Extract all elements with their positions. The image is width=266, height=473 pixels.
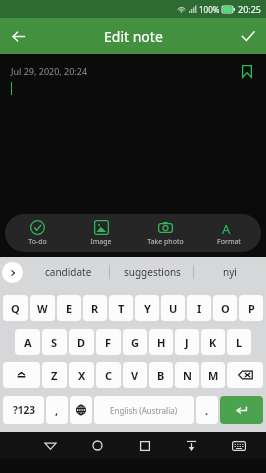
- staticText: Take photo: [147, 237, 184, 247]
- button[interactable]: Y: [135, 295, 159, 321]
- staticText: D: [77, 335, 86, 350]
- button[interactable]: Home: [74, 432, 121, 459]
- staticText: Aa: [222, 220, 237, 235]
- button[interactable]: Pin note: [236, 60, 258, 82]
- button[interactable]: O: [213, 295, 237, 321]
- staticText: Jul 29, 2020, 20:24: [11, 65, 88, 77]
- button[interactable]: V: [123, 362, 147, 388]
- staticText: To-do: [28, 237, 47, 247]
- staticText: Q: [11, 301, 20, 316]
- button[interactable]: I: [187, 295, 211, 321]
- button[interactable]: B: [149, 362, 173, 388]
- staticText: 20:25: [238, 3, 262, 15]
- staticText: ,: [55, 403, 59, 418]
- button[interactable]: Back: [27, 432, 74, 459]
- button[interactable]: G: [123, 329, 147, 355]
- button[interactable]: J: [175, 329, 199, 355]
- button[interactable]: Save note: [230, 18, 266, 54]
- staticText: X: [78, 368, 86, 383]
- button[interactable]: More suggestions: [2, 262, 23, 283]
- staticText: B: [157, 368, 165, 383]
- button[interactable]: Q: [3, 295, 28, 321]
- staticText: suggestions: [124, 265, 181, 279]
- staticText: U: [169, 301, 178, 316]
- button[interactable]: Change language: [70, 396, 92, 424]
- staticText: V: [131, 368, 139, 383]
- staticText: M: [208, 368, 219, 383]
- button[interactable]: C: [96, 362, 121, 388]
- staticText: P: [248, 301, 255, 316]
- button[interactable]: Backspace: [227, 362, 263, 388]
- staticText: G: [131, 335, 139, 350]
- button[interactable]: Hide keyboard: [168, 432, 215, 459]
- staticText: 100%: [199, 4, 220, 15]
- button[interactable]: Image: [69, 214, 133, 252]
- button[interactable]: Z: [42, 362, 67, 388]
- staticText: W: [37, 301, 48, 316]
- button[interactable]: P: [239, 295, 263, 321]
- button[interactable]: T: [109, 295, 133, 321]
- staticText: S: [51, 335, 58, 350]
- button[interactable]: ,: [46, 396, 68, 424]
- button[interactable]: Recents: [121, 432, 168, 459]
- button[interactable]: M: [201, 362, 225, 388]
- staticText: Format: [217, 237, 241, 247]
- staticText: C: [105, 368, 113, 383]
- button[interactable]: ?123: [3, 396, 44, 424]
- button[interactable]: X: [69, 362, 94, 388]
- staticText: T: [118, 301, 125, 316]
- button[interactable]: H: [149, 329, 173, 355]
- button[interactable]: N: [175, 362, 199, 388]
- staticText: L: [236, 335, 243, 350]
- button[interactable]: candidate: [26, 257, 110, 287]
- button[interactable]: Take photo: [133, 214, 197, 252]
- staticText: H: [157, 335, 166, 350]
- staticText: N: [183, 368, 192, 383]
- button[interactable]: S: [42, 329, 67, 355]
- staticText: I: [197, 301, 202, 316]
- button[interactable]: W: [30, 295, 55, 321]
- button[interactable]: Back: [0, 18, 36, 54]
- staticText: Edit note: [104, 27, 163, 46]
- button[interactable]: D: [69, 329, 94, 355]
- button[interactable]: nyi: [194, 257, 266, 287]
- button[interactable]: Aa: [197, 214, 261, 252]
- staticText: candidate: [45, 265, 92, 279]
- staticText: Image: [90, 237, 112, 247]
- staticText: nyi: [223, 265, 237, 279]
- staticText: Y: [144, 301, 151, 316]
- button[interactable]: K: [201, 329, 225, 355]
- button[interactable]: English (Australia): [94, 396, 194, 424]
- button[interactable]: Enter: [220, 396, 263, 424]
- staticText: ?123: [13, 403, 35, 417]
- staticText: J: [185, 335, 189, 350]
- staticText: English (Australia): [110, 405, 178, 416]
- staticText: E: [66, 301, 73, 316]
- staticText: K: [209, 335, 217, 350]
- button[interactable]: U: [161, 295, 185, 321]
- staticText: A: [24, 335, 32, 350]
- staticText: R: [91, 301, 99, 316]
- button[interactable]: R: [83, 295, 107, 321]
- button[interactable]: L: [227, 329, 251, 355]
- button[interactable]: E: [57, 295, 81, 321]
- staticText: O: [221, 301, 230, 316]
- button[interactable]: F: [96, 329, 121, 355]
- staticText: F: [105, 335, 112, 350]
- staticText: .: [205, 403, 209, 418]
- button[interactable]: Switch keyboard: [215, 432, 262, 459]
- button[interactable]: A: [15, 329, 40, 355]
- button[interactable]: suggestions: [110, 257, 194, 287]
- staticText: Z: [51, 368, 58, 383]
- button[interactable]: .: [196, 396, 218, 424]
- button[interactable]: To-do: [5, 214, 69, 252]
- button[interactable]: Shift: [3, 362, 40, 388]
